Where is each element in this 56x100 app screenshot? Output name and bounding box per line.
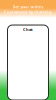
staticText: with sellers: [17, 15, 39, 20]
staticText: Customized by chatting: [4, 9, 52, 15]
staticText: Chat: [23, 27, 33, 32]
staticText: Get your orders: [12, 4, 43, 9]
